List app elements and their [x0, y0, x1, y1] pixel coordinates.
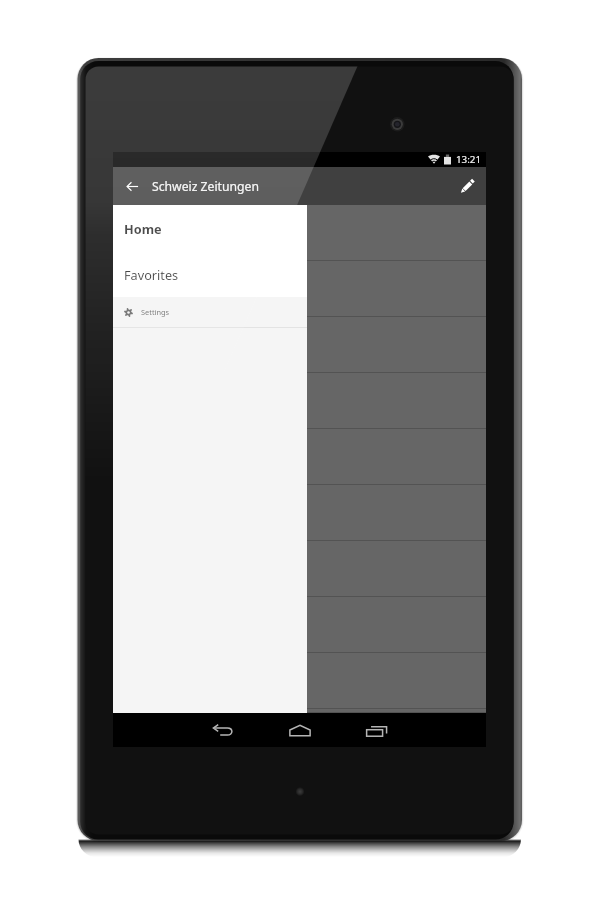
staticText: 13:21 [456, 153, 482, 166]
button[interactable] [113, 597, 486, 653]
button[interactable]: Favorites [113, 251, 307, 297]
button[interactable] [113, 485, 486, 541]
button[interactable] [113, 373, 486, 429]
button[interactable] [113, 317, 486, 373]
button[interactable]: Recents [338, 713, 415, 747]
staticText: Favorites [124, 266, 179, 283]
staticText: Schweiz Zeitungen [152, 178, 259, 195]
staticText: Home [124, 220, 162, 237]
button[interactable] [113, 709, 486, 713]
button[interactable]: Back [184, 713, 261, 747]
button[interactable] [113, 205, 486, 261]
button[interactable] [113, 653, 486, 709]
staticText: Settings [141, 307, 170, 317]
button[interactable]: Settings [113, 297, 307, 327]
button[interactable]: Home [261, 713, 338, 747]
button[interactable] [113, 429, 486, 485]
button[interactable]: Home [113, 205, 307, 251]
button[interactable] [113, 541, 486, 597]
button[interactable]: Back [113, 167, 152, 205]
button[interactable]: Edit [448, 167, 486, 205]
button[interactable] [113, 261, 486, 317]
